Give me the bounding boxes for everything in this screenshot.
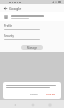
staticText: Cancel [30,92,38,95]
button[interactable]: Back [2,5,8,11]
button[interactable]: Security [0,33,64,41]
button[interactable]: Turn off [44,91,58,96]
staticText: Turn off [46,92,56,95]
button[interactable] [0,12,64,21]
button[interactable]: Cancel [28,91,40,96]
button[interactable]: Recent apps [47,102,52,107]
button[interactable]: Back [12,102,17,107]
staticText: Google [9,6,22,11]
button[interactable]: Profile [0,23,64,31]
button[interactable]: Home [30,102,35,107]
button[interactable]: Manage [21,45,43,50]
staticText: Manage [27,46,38,50]
staticText: Profile [4,24,13,28]
staticText: Security [4,34,14,38]
